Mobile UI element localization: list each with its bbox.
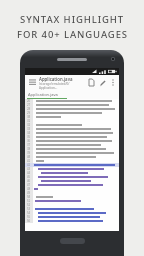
staticText: 55 <box>27 215 31 219</box>
staticText: 51 <box>27 199 31 203</box>
staticText: 36 <box>27 139 31 143</box>
staticText: 26 <box>27 99 31 103</box>
staticText: 27 <box>27 103 31 107</box>
staticText: 38 <box>27 147 31 151</box>
staticText: FOR 40+ LANGUAGES <box>17 28 128 41</box>
staticText: 35 <box>27 135 31 139</box>
staticText: 29 <box>27 111 31 115</box>
staticText: 43 <box>27 167 31 171</box>
staticText: 31 <box>27 119 31 123</box>
button[interactable]: New file <box>86 77 97 88</box>
staticText: 49 <box>27 191 31 195</box>
button[interactable]: Open navigation menu <box>27 77 38 88</box>
staticText: 41 <box>27 159 31 163</box>
staticText: 53 <box>27 207 31 211</box>
button[interactable]: Application.java <box>39 76 86 90</box>
staticText: 34 <box>27 131 31 135</box>
staticText: 56 <box>27 219 31 223</box>
button[interactable]: More options <box>108 78 117 87</box>
staticText: 46 <box>27 179 31 183</box>
button[interactable]: Application.java <box>25 90 119 98</box>
staticText: 33 <box>27 127 31 131</box>
staticText: 37 <box>27 143 31 147</box>
staticText: 28 <box>27 107 31 111</box>
staticText: 48 <box>27 187 31 191</box>
staticText: /storage/emulated/0/Application... <box>39 82 86 90</box>
staticText: 54 <box>27 211 31 215</box>
staticText: 42 <box>27 163 31 167</box>
button[interactable]: Edit <box>97 77 108 88</box>
staticText: 30 <box>27 115 31 119</box>
staticText: SYNTAX HIGHLIGHT <box>20 13 124 26</box>
staticText: 52 <box>27 203 31 207</box>
staticText: Application.java <box>28 92 58 97</box>
staticText: 50 <box>27 195 31 199</box>
button[interactable]: 26 <box>25 99 119 231</box>
staticText: 40 <box>27 155 31 159</box>
staticText: 32 <box>27 123 31 127</box>
staticText: Application.java <box>39 76 73 82</box>
staticText: 47 <box>27 183 31 187</box>
staticText: 44 <box>27 171 31 175</box>
staticText: 39 <box>27 151 31 155</box>
staticText: 45 <box>27 175 31 179</box>
